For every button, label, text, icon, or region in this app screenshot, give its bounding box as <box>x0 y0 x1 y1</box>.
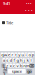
staticText: c <box>13 63 15 68</box>
staticText: y <box>18 52 20 57</box>
staticText: f <box>14 58 15 63</box>
staticText: p <box>32 52 34 57</box>
button[interactable]: m <box>26 63 29 68</box>
button[interactable]: a <box>2 58 5 62</box>
button[interactable]: n <box>23 63 26 68</box>
button[interactable]: t <box>14 52 17 57</box>
button[interactable]: c <box>13 63 16 68</box>
staticText: b <box>20 63 22 68</box>
staticText: 9:41 <box>3 1 10 6</box>
staticText: v <box>16 63 18 68</box>
button[interactable]: 123 <box>3 69 7 73</box>
staticText: w <box>4 52 7 57</box>
staticText: j <box>24 58 25 63</box>
staticText: o <box>28 52 30 57</box>
button[interactable]: s <box>6 58 9 62</box>
button[interactable]: z <box>6 63 9 68</box>
button[interactable]: f <box>13 58 16 62</box>
staticText: k <box>27 58 29 63</box>
button[interactable]: r <box>11 52 14 57</box>
staticText: m <box>26 63 30 68</box>
button[interactable]: w <box>4 52 7 57</box>
staticText: r <box>11 52 13 57</box>
button[interactable]: e <box>8 52 10 57</box>
button[interactable]: b <box>19 63 22 68</box>
staticText: q <box>1 52 3 57</box>
staticText: d <box>10 58 12 63</box>
staticText: t <box>15 52 16 57</box>
button[interactable]: d <box>9 58 12 62</box>
staticText: a <box>3 58 5 63</box>
button[interactable]: l <box>30 58 32 62</box>
staticText: ••• <box>26 1 32 6</box>
staticText: go <box>27 69 31 74</box>
staticText: s <box>6 58 8 63</box>
staticText: space <box>12 69 22 74</box>
staticText: g <box>16 58 18 63</box>
button[interactable]: i <box>25 52 27 57</box>
staticText: l <box>31 58 32 63</box>
button[interactable]: o <box>28 52 31 57</box>
button[interactable]: y <box>18 52 21 57</box>
staticText: ⌫ <box>29 63 35 68</box>
staticText: ⇧ <box>2 63 5 68</box>
button[interactable]: q <box>1 52 4 57</box>
button[interactable]: go <box>26 69 32 73</box>
staticText: x <box>10 63 12 68</box>
button[interactable]: u <box>21 52 24 57</box>
button[interactable]: v <box>16 63 19 68</box>
staticText: 123 <box>3 66 7 75</box>
staticText: Title <box>6 20 13 25</box>
button[interactable]: k <box>26 58 29 62</box>
button[interactable]: g <box>16 58 19 62</box>
staticText: e <box>8 52 10 57</box>
button[interactable]: ⌫ <box>30 63 34 68</box>
button[interactable]: h <box>19 58 22 62</box>
button[interactable]: space <box>8 69 26 73</box>
staticText: • • • <box>25 8 33 13</box>
staticText: n <box>23 63 25 68</box>
button[interactable]: p <box>31 52 34 57</box>
staticText: h <box>20 58 22 63</box>
staticText: z <box>6 63 8 68</box>
button[interactable]: ⇧ <box>1 63 5 68</box>
button[interactable]: x <box>9 63 12 68</box>
button[interactable]: j <box>23 58 26 62</box>
staticText: u <box>22 52 24 57</box>
